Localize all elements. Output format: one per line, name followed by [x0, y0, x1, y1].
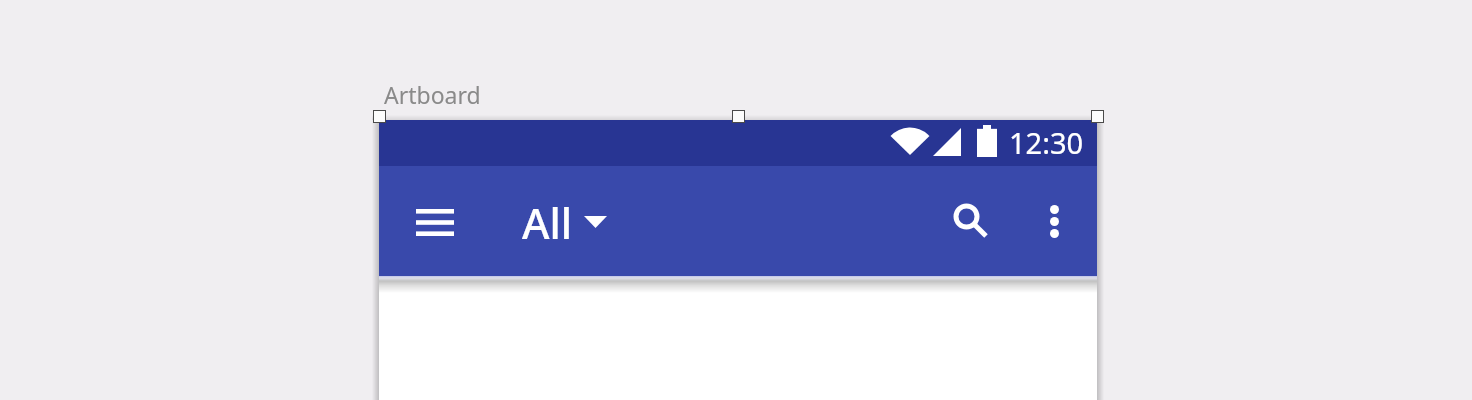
- staticText: Artboard: [384, 79, 481, 110]
- staticText: All: [522, 194, 573, 246]
- staticText: 12:30: [1009, 123, 1084, 162]
- button[interactable]: More options: [1029, 196, 1079, 246]
- button[interactable]: Search: [946, 196, 996, 246]
- button[interactable]: All: [522, 194, 607, 246]
- button[interactable]: Open navigation drawer: [404, 197, 466, 247]
